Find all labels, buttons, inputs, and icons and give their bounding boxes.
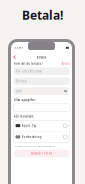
staticText: ▮▮▮ (65, 46, 68, 49)
staticText: Genom att betala godkänner du våra villk… (14, 145, 56, 147)
button[interactable]: Kortbetalning (14, 131, 69, 142)
staticText: För- och efternamn (16, 70, 42, 73)
staticText: Välj betalsätt (14, 115, 34, 118)
staticText: Vilka uppgifter (14, 98, 36, 102)
staticText: Betala 170 kr (31, 152, 52, 155)
staticText: Land (16, 89, 22, 93)
staticText: Betala (36, 56, 46, 59)
button[interactable]: Betala 170 kr (14, 150, 69, 157)
staticText: 09:41 (14, 46, 23, 49)
staticText: Belopp (16, 79, 27, 83)
button[interactable]: Apple Pay (14, 120, 69, 131)
staticText: Ändra (61, 62, 69, 65)
staticText: Apple Pay (22, 124, 36, 127)
button[interactable]: Ändra (61, 62, 69, 65)
staticText: Vem vill du betala? (14, 62, 43, 65)
button[interactable]: Back (12, 54, 17, 61)
staticText: Betala! (22, 7, 63, 23)
staticText: Kortbetalning (22, 135, 42, 139)
